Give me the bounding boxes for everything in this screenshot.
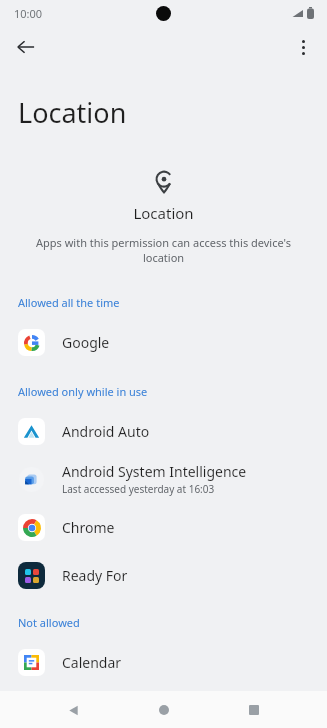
staticText: Google [62, 333, 110, 352]
button[interactable]: Back [8, 29, 44, 65]
staticText: 10:00 [14, 6, 43, 21]
button[interactable]: More options [286, 30, 320, 64]
staticText: Apps with this permission can access thi… [34, 235, 293, 265]
staticText: Location [18, 94, 127, 131]
staticText: Ready For [62, 566, 128, 585]
button[interactable]: Back [55, 692, 91, 728]
button[interactable]: Ready For [0, 551, 327, 599]
staticText: Last accessed yesterday at 16:03 [62, 482, 215, 496]
staticText: Android Auto [62, 422, 150, 441]
button[interactable]: Google [0, 318, 327, 366]
staticText: Calendar [62, 653, 122, 672]
button[interactable]: Recents [236, 692, 272, 728]
staticText: Android System Intelligence [62, 462, 247, 481]
button[interactable]: Calendar [0, 638, 327, 686]
button[interactable]: Home [146, 692, 182, 728]
staticText: Allowed only while in use [18, 384, 148, 399]
staticText: Location [133, 203, 194, 223]
staticText: Not allowed [18, 615, 80, 630]
button[interactable]: Chrome [0, 503, 327, 551]
button[interactable]: Android Auto [0, 407, 327, 455]
staticText: Chrome [62, 518, 115, 537]
button[interactable]: Android System Intelligence [0, 455, 327, 503]
staticText: Allowed all the time [18, 295, 120, 310]
